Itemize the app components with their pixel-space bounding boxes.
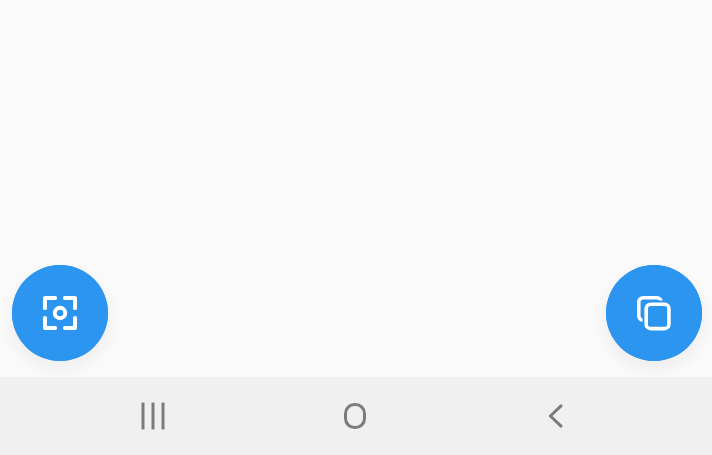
button[interactable]: Scan <box>12 265 108 361</box>
button[interactable]: Recents <box>113 377 193 455</box>
button[interactable]: Back <box>516 377 596 455</box>
button[interactable]: Duplicate <box>606 265 702 361</box>
button[interactable]: Duplicate <box>606 265 702 361</box>
button[interactable]: Scan <box>12 265 108 361</box>
button[interactable]: Home <box>315 377 395 455</box>
